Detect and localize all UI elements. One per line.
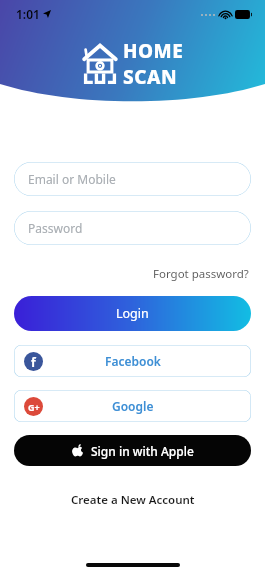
staticText: Sign in with Apple — [91, 443, 194, 459]
staticText: Email or Mobile — [28, 171, 116, 187]
button[interactable]: G+ — [14, 390, 251, 422]
staticText: 1:01 — [16, 6, 40, 22]
staticText: SCAN — [123, 64, 178, 90]
staticText: Login — [116, 305, 149, 322]
button[interactable]: Create a New Account — [67, 488, 199, 512]
staticText: f — [31, 354, 36, 370]
button[interactable]: Sign in with Apple — [14, 435, 251, 466]
button[interactable]: Login — [14, 296, 251, 331]
staticText: Forgot password? — [153, 266, 249, 282]
staticText: Google — [112, 398, 154, 414]
staticText: Password — [28, 220, 83, 236]
button[interactable]: f — [14, 345, 251, 377]
staticText: HOME — [123, 38, 184, 64]
staticText: G+ — [28, 401, 40, 413]
staticText: Facebook — [105, 353, 161, 369]
button[interactable]: Password — [14, 211, 251, 245]
button[interactable]: Email or Mobile — [14, 162, 251, 196]
staticText: Create a New Account — [71, 492, 195, 508]
button[interactable]: Forgot password? — [151, 264, 251, 284]
